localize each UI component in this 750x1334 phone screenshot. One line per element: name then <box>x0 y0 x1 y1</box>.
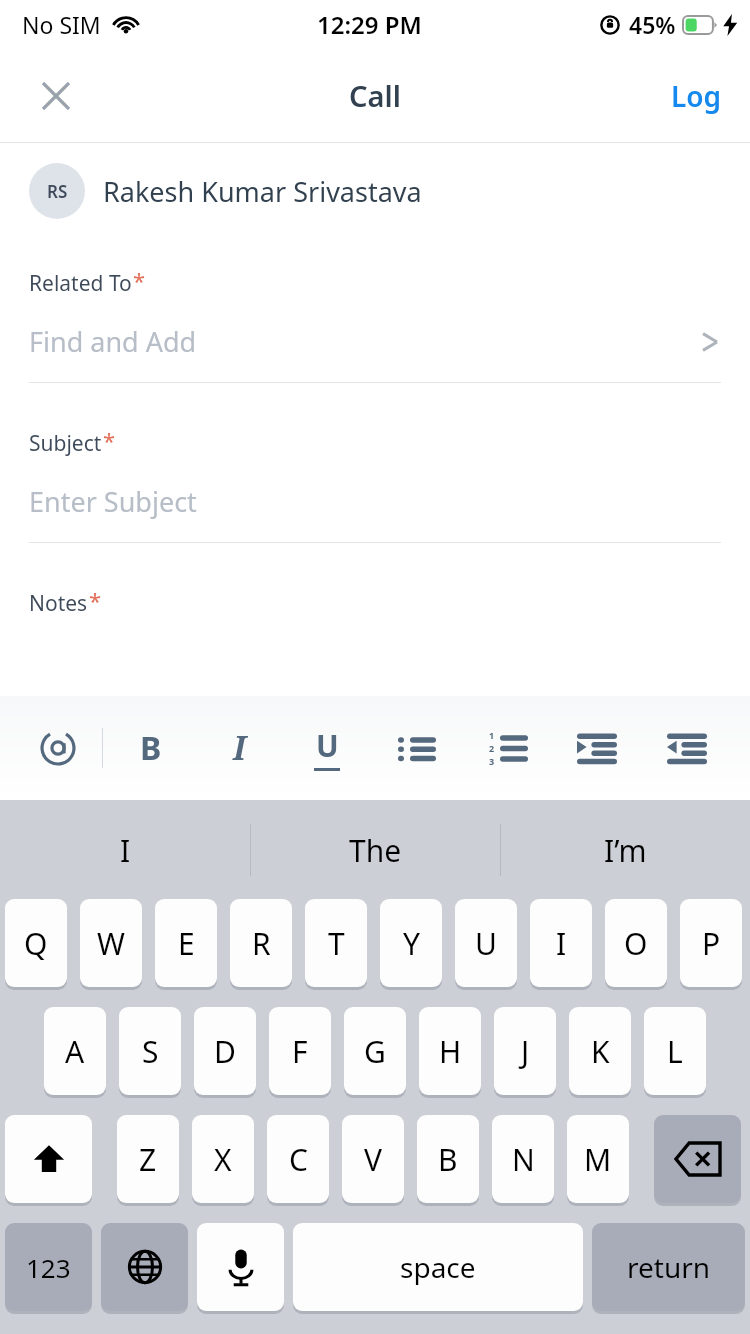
button[interactable]: return <box>592 1224 745 1312</box>
button[interactable]: W <box>80 900 142 988</box>
staticText: Q <box>24 923 48 964</box>
staticText: Notes <box>29 589 88 618</box>
staticText: K <box>591 1031 610 1072</box>
staticText: C <box>289 1139 308 1180</box>
button[interactable]: Bold <box>115 712 187 784</box>
staticText: H <box>439 1031 462 1072</box>
staticText: O <box>624 923 648 964</box>
button[interactable]: J <box>494 1008 556 1096</box>
button[interactable]: Change keyboard <box>101 1224 188 1312</box>
staticText: T <box>328 923 345 964</box>
staticText: S <box>142 1031 159 1072</box>
staticText: A <box>65 1031 85 1072</box>
staticText: No SIM <box>22 9 101 40</box>
staticText: Log <box>671 77 722 115</box>
button[interactable]: H <box>419 1008 481 1096</box>
staticText: B <box>438 1139 458 1180</box>
button[interactable]: M <box>567 1116 629 1204</box>
button[interactable]: Related To <box>0 269 750 383</box>
staticText: Find and Add <box>29 323 701 360</box>
button[interactable]: Notes <box>0 589 750 619</box>
button[interactable]: 123 <box>5 1224 92 1312</box>
button[interactable]: Numbered list <box>471 712 543 784</box>
staticText: D <box>214 1031 236 1072</box>
staticText: 12:29 PM <box>317 8 422 41</box>
staticText: * <box>103 425 116 455</box>
button[interactable]: Log <box>663 67 730 125</box>
staticText: Subject <box>29 429 102 458</box>
staticText: M <box>584 1139 612 1180</box>
button[interactable]: I <box>0 800 250 900</box>
staticText: J <box>521 1031 530 1072</box>
button[interactable]: V <box>342 1116 404 1204</box>
button[interactable]: Z <box>117 1116 179 1204</box>
staticText: 1 <box>489 729 495 741</box>
button[interactable]: P <box>680 900 742 988</box>
staticText: F <box>292 1031 308 1072</box>
button[interactable]: N <box>492 1116 554 1204</box>
button[interactable]: O <box>605 900 667 988</box>
staticText: U <box>316 725 339 766</box>
staticText: E <box>178 923 195 964</box>
button[interactable]: B <box>417 1116 479 1204</box>
button[interactable]: R <box>230 900 292 988</box>
button[interactable]: X <box>192 1116 254 1204</box>
button[interactable]: Q <box>5 900 67 988</box>
staticText: W <box>97 923 125 964</box>
staticText: RS <box>47 180 68 203</box>
button[interactable]: Close <box>20 60 92 132</box>
button[interactable]: The <box>251 800 500 900</box>
button[interactable]: Decrease indent <box>651 712 723 784</box>
button[interactable]: Increase indent <box>561 712 633 784</box>
button[interactable]: Shift <box>5 1116 92 1204</box>
button[interactable]: Dictation <box>197 1224 284 1312</box>
staticText: 3 <box>489 755 495 767</box>
button[interactable]: space <box>293 1224 583 1312</box>
staticText: 45% <box>629 9 676 40</box>
staticText: Enter Subject <box>29 483 197 520</box>
staticText: N <box>512 1139 535 1180</box>
staticText: * <box>133 265 146 295</box>
staticText: B <box>140 726 162 770</box>
button[interactable]: L <box>644 1008 706 1096</box>
button[interactable]: Mention <box>22 712 94 784</box>
staticText: G <box>364 1031 386 1072</box>
button[interactable]: Italic <box>203 712 275 784</box>
button[interactable]: RS <box>0 151 750 231</box>
button[interactable]: U <box>455 900 517 988</box>
button[interactable]: D <box>194 1008 256 1096</box>
button[interactable]: G <box>344 1008 406 1096</box>
staticText: Z <box>139 1139 157 1180</box>
button[interactable]: Backspace <box>654 1116 741 1204</box>
button[interactable]: T <box>305 900 367 988</box>
staticText: Related To <box>29 269 132 298</box>
staticText: space <box>400 1248 476 1286</box>
staticText: L <box>667 1031 683 1072</box>
staticText: Y <box>403 923 420 964</box>
button[interactable]: I <box>530 900 592 988</box>
button[interactable]: Y <box>380 900 442 988</box>
staticText: * <box>89 585 102 615</box>
staticText: I <box>233 726 246 770</box>
staticText: return <box>627 1248 711 1286</box>
button[interactable]: Bulleted list <box>381 712 453 784</box>
button[interactable]: Subject <box>0 429 750 543</box>
button[interactable]: E <box>155 900 217 988</box>
staticText: X <box>214 1139 232 1180</box>
button[interactable]: S <box>119 1008 181 1096</box>
staticText: V <box>364 1139 382 1180</box>
staticText: I <box>556 923 567 964</box>
button[interactable]: K <box>569 1008 631 1096</box>
staticText: Call <box>349 76 401 115</box>
button[interactable]: A <box>44 1008 106 1096</box>
staticText: I’m <box>604 830 647 871</box>
staticText: U <box>475 923 497 964</box>
staticText: P <box>702 923 721 964</box>
staticText: R <box>252 923 271 964</box>
button[interactable]: C <box>267 1116 329 1204</box>
button[interactable]: I’m <box>501 800 750 900</box>
staticText: The <box>349 830 402 871</box>
button[interactable]: Underline <box>291 712 363 784</box>
button[interactable]: F <box>269 1008 331 1096</box>
staticText: I <box>120 830 131 871</box>
